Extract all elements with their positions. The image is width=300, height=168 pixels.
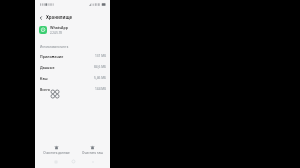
staticText: Кэш xyxy=(40,76,48,81)
staticText: Использовано места xyxy=(40,45,69,49)
button[interactable]: Recents xyxy=(52,158,59,165)
staticText: 84,6 МБ xyxy=(94,65,107,69)
button[interactable]: Очистить данные xyxy=(38,143,74,157)
button[interactable]: Back xyxy=(37,14,44,21)
staticText: Очистить данные xyxy=(43,151,70,155)
staticText: Очистить кэш xyxy=(82,151,103,155)
button[interactable]: Приложение xyxy=(35,51,110,61)
staticText: Хранилище xyxy=(46,14,73,20)
staticText: 5,46 МБ xyxy=(94,76,107,80)
button[interactable]: WhatsApp xyxy=(35,23,110,36)
staticText: Всего xyxy=(40,87,50,92)
staticText: WhatsApp xyxy=(50,25,68,30)
button[interactable]: Данные xyxy=(35,62,110,72)
staticText: 2.24.5.78 xyxy=(50,31,62,35)
staticText: 131 МБ xyxy=(95,54,107,58)
button[interactable]: Всего xyxy=(35,84,110,94)
staticText: 144 МБ xyxy=(95,87,107,91)
button[interactable]: Кэш xyxy=(35,73,110,83)
button[interactable]: Очистить кэш xyxy=(74,143,110,157)
staticText: Данные xyxy=(40,65,55,70)
button[interactable]: Home xyxy=(70,158,77,165)
staticText: Приложение xyxy=(40,54,64,59)
